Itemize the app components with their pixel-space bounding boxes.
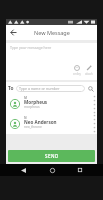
button[interactable]: M <box>6 94 97 114</box>
staticText: New Message <box>34 29 70 36</box>
staticText: SEND <box>45 153 59 159</box>
button[interactable]: Back <box>17 164 29 176</box>
staticText: neo_theone <box>24 125 42 129</box>
staticText: attach <box>85 72 93 76</box>
staticText: To <box>8 85 14 92</box>
staticText: smiley <box>73 72 81 76</box>
button[interactable]: Emoji <box>72 64 82 77</box>
staticText: Neo Anderson <box>24 119 57 125</box>
button[interactable]: Home <box>46 164 58 176</box>
staticText: Type a name or number <box>19 86 60 91</box>
staticText: N <box>24 116 27 120</box>
staticText: Morpheus <box>24 99 48 105</box>
button[interactable]: Type a name or number <box>16 85 85 92</box>
staticText: morpheus <box>24 105 40 109</box>
staticText: M <box>24 96 28 100</box>
button[interactable]: Recents <box>74 164 86 176</box>
button[interactable]: N <box>6 114 97 134</box>
button[interactable]: Search <box>86 84 95 93</box>
button[interactable]: SEND <box>8 150 95 162</box>
button[interactable]: Attach <box>84 64 94 77</box>
staticText: Type your message here <box>10 45 52 50</box>
button[interactable]: Back <box>6 25 21 40</box>
